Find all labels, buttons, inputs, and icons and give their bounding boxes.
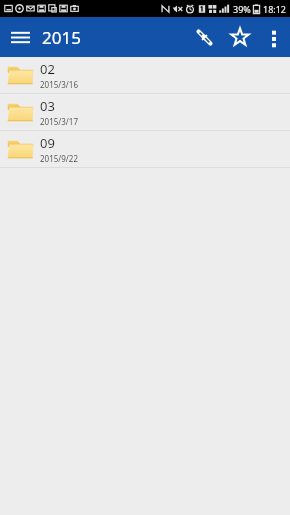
button[interactable]: Link: [186, 17, 222, 57]
button[interactable]: More options: [258, 17, 290, 57]
staticText: 02: [40, 60, 55, 78]
button[interactable]: 02: [0, 57, 290, 94]
staticText: 03: [40, 97, 55, 115]
button[interactable]: Open navigation menu: [0, 17, 40, 57]
staticText: 39%: [233, 3, 251, 15]
staticText: 2015/9/22: [40, 153, 78, 164]
staticText: 18:12: [263, 3, 287, 15]
staticText: 2015/3/16: [40, 79, 78, 90]
staticText: 2015: [42, 26, 81, 49]
staticText: 2015/3/17: [40, 116, 78, 127]
button[interactable]: 03: [0, 94, 290, 131]
button[interactable]: 09: [0, 131, 290, 168]
staticText: 09: [40, 134, 55, 152]
button[interactable]: Favorite: [222, 17, 258, 57]
